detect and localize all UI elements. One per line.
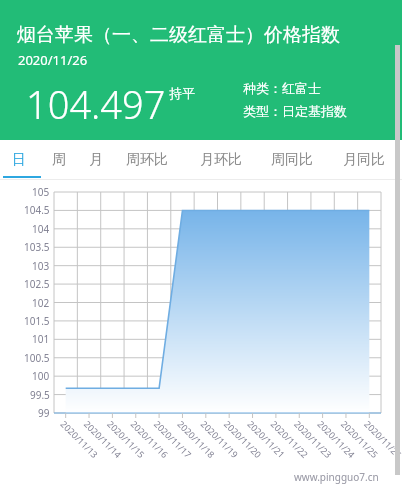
staticText: 周同比 — [271, 151, 313, 169]
staticText: 类型：日定基指数 — [243, 103, 347, 119]
button[interactable]: 周环比 — [118, 140, 176, 180]
staticText: 持平 — [169, 85, 195, 101]
button[interactable]: 月同比 — [335, 140, 393, 180]
staticText: 种类：红富士 — [243, 80, 321, 96]
staticText: 月 — [89, 151, 103, 169]
staticText: 周环比 — [126, 151, 168, 169]
staticText: 月环比 — [200, 151, 242, 169]
button[interactable]: 周同比 — [263, 140, 321, 180]
staticText: 烟台苹果（一、二级红富士）价格指数 — [17, 23, 340, 47]
staticText: 周 — [52, 151, 66, 169]
staticText: 2020/11/26 — [18, 51, 88, 69]
staticText: 日 — [12, 151, 26, 169]
staticText: 月同比 — [343, 151, 385, 169]
button[interactable]: 月环比 — [192, 140, 250, 180]
button[interactable]: 日 — [4, 140, 34, 180]
button[interactable]: 周 — [44, 140, 74, 180]
staticText: 104.497 — [26, 78, 166, 130]
button[interactable]: 月 — [81, 140, 111, 180]
